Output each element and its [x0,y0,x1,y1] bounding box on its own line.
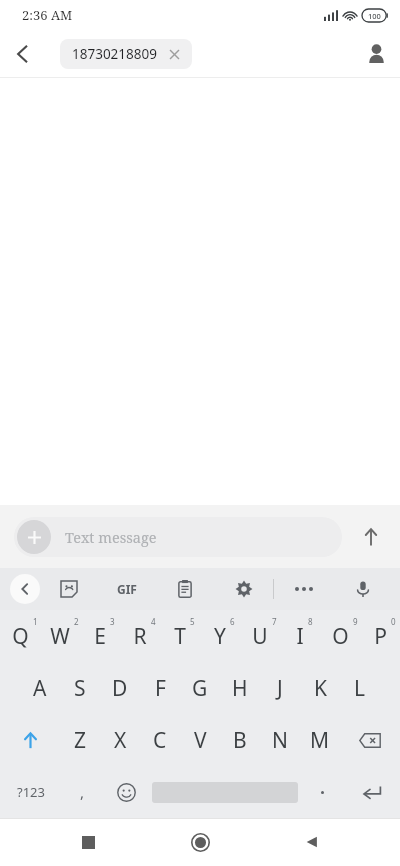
button[interactable]: Y [200,610,240,662]
button[interactable]: , [61,766,103,818]
button[interactable]: N [260,714,300,766]
button[interactable]: X [100,714,140,766]
button[interactable]: K [300,662,340,714]
staticText: N [272,726,288,755]
staticText: R [133,622,147,651]
button[interactable]: F [140,662,180,714]
staticText: 4 [151,616,156,627]
staticText: 3 [110,616,115,627]
button[interactable]: R [120,610,160,662]
staticText: I [296,622,304,651]
staticText: V [194,726,207,755]
button[interactable]: Z [60,714,100,766]
staticText: C [153,726,167,755]
staticText: , [80,782,85,802]
button[interactable]: E [80,610,120,662]
button[interactable]: A [20,662,60,714]
button[interactable]: Add attachment [17,520,51,554]
button[interactable]: U [240,610,280,662]
button[interactable]: More options [274,568,333,610]
button[interactable]: 18730218809 [60,39,192,69]
button[interactable]: L [340,662,380,714]
staticText: 0 [391,616,396,627]
button[interactable]: S [60,662,100,714]
button[interactable]: G [180,662,220,714]
button[interactable]: H [220,662,260,714]
staticText: S [74,674,86,703]
staticText: 8 [308,616,313,627]
button[interactable]: D [100,662,140,714]
button[interactable]: Backspace [340,714,400,766]
button[interactable]: C [140,714,180,766]
staticText: Z [74,726,87,755]
staticText: 6 [230,616,235,627]
button[interactable]: M [300,714,340,766]
button[interactable]: Emoji [103,766,149,818]
button[interactable]: V [180,714,220,766]
button[interactable]: I [280,610,320,662]
button[interactable]: Back [288,818,336,866]
button[interactable]: Add attachment [14,517,342,557]
button[interactable]: T [160,610,200,662]
staticText: 7 [272,616,277,627]
staticText: D [112,674,128,703]
staticText: E [94,622,106,651]
staticText: 9 [353,616,358,627]
button[interactable]: Clipboard [156,568,214,610]
button[interactable]: Contact details [352,30,400,77]
staticText: ?123 [17,783,45,801]
button[interactable]: Settings [214,568,273,610]
staticText: M [310,726,330,755]
staticText: A [33,674,47,703]
button[interactable]: Voice input [333,568,392,610]
staticText: Text message [65,527,157,547]
button[interactable]: Home [176,818,224,866]
button[interactable]: Send [342,508,400,566]
button[interactable]: Recent apps [64,818,112,866]
button[interactable]: Q [0,610,40,662]
staticText: X [114,726,127,755]
button[interactable]: P [360,610,400,662]
staticText: 2:36 AM [22,6,73,24]
staticText: U [252,622,268,651]
staticText: P [374,622,387,651]
staticText: T [174,622,186,651]
staticText: B [233,726,247,755]
button[interactable]: B [220,714,260,766]
staticText: 2 [74,616,79,627]
button[interactable]: Space [149,766,301,818]
staticText: H [232,674,248,703]
button[interactable]: Back [0,31,46,77]
button[interactable]: Stickers [40,568,98,610]
staticText: 5 [190,616,195,627]
button[interactable]: J [260,662,300,714]
staticText: 1 [33,616,38,627]
staticText: J [277,674,283,703]
staticText: Q [12,622,29,651]
button[interactable]: GIF [98,568,156,610]
staticText: G [192,674,208,703]
button[interactable]: Expand toolbar [10,574,40,604]
button[interactable]: Enter [343,766,400,818]
staticText: L [354,674,366,703]
button[interactable]: Shift [0,714,60,766]
staticText: GIF [117,581,137,597]
button[interactable]: O [320,610,360,662]
button[interactable] [301,766,343,818]
staticText: F [155,674,166,703]
staticText: O [332,622,349,651]
staticText: Y [214,622,226,651]
button[interactable]: W [40,610,80,662]
staticText: 100 [368,11,381,21]
button[interactable]: ?123 [0,766,61,818]
staticText: 18730218809 [72,45,157,63]
staticText: W [50,622,70,651]
staticText: K [314,674,327,703]
